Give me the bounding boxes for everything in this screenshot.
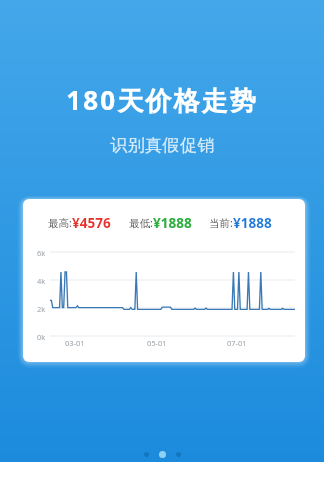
staticText: 当前: <box>209 216 233 230</box>
staticText: 03-01 <box>65 338 85 348</box>
staticText: 6k <box>37 248 46 258</box>
button[interactable]: 最高: <box>23 199 305 362</box>
staticText: ¥4576 <box>72 214 111 232</box>
button[interactable] <box>176 452 181 457</box>
staticText: 最低: <box>129 216 153 230</box>
staticText: 180天价格走势 <box>66 82 258 118</box>
staticText: 07-01 <box>227 338 247 348</box>
staticText: ¥1888 <box>153 214 192 232</box>
staticText: 识别真假促销 <box>110 135 215 156</box>
staticText: 2k <box>37 304 46 314</box>
staticText: 05-01 <box>147 338 167 348</box>
staticText: 4k <box>37 276 46 286</box>
staticText: ¥1888 <box>233 214 272 232</box>
button[interactable] <box>144 452 149 457</box>
staticText: 0k <box>37 332 46 342</box>
staticText: 最高: <box>48 216 72 230</box>
button[interactable] <box>159 451 166 458</box>
